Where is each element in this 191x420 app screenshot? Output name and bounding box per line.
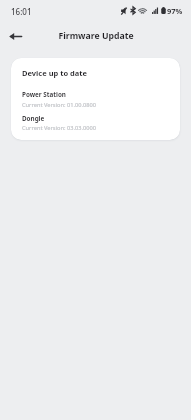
staticText: 97% — [167, 6, 183, 16]
staticText: Current Version: 03.03.0000 — [22, 124, 97, 132]
staticText: Device up to date — [22, 68, 88, 78]
staticText: Firmware Update — [58, 30, 134, 42]
staticText: Current Version: 01.00.0800 — [22, 101, 97, 109]
staticText: Power Station — [22, 90, 66, 99]
staticText: 16:01 — [11, 6, 32, 17]
button[interactable]: Back — [5, 26, 26, 47]
staticText: Dongle — [22, 114, 45, 123]
